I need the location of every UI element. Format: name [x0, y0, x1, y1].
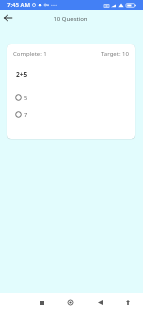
button[interactable]: Hide keyboard — [119, 294, 136, 310]
button[interactable]: Back — [0, 10, 16, 26]
button[interactable]: Home — [62, 294, 79, 310]
staticText: 7:45 AM — [7, 1, 30, 9]
staticText: 7 — [24, 111, 28, 118]
button[interactable]: Back — [92, 294, 109, 310]
staticText: Complete: 1 — [13, 50, 47, 58]
button[interactable]: 5 — [7, 94, 135, 101]
button[interactable]: Recents — [33, 294, 50, 310]
staticText: 5 — [24, 94, 28, 101]
staticText: Target: 10 — [101, 50, 129, 58]
staticText: 10 Question — [53, 15, 88, 23]
button[interactable]: 7 — [7, 111, 135, 118]
staticText: 2+5 — [16, 70, 28, 79]
